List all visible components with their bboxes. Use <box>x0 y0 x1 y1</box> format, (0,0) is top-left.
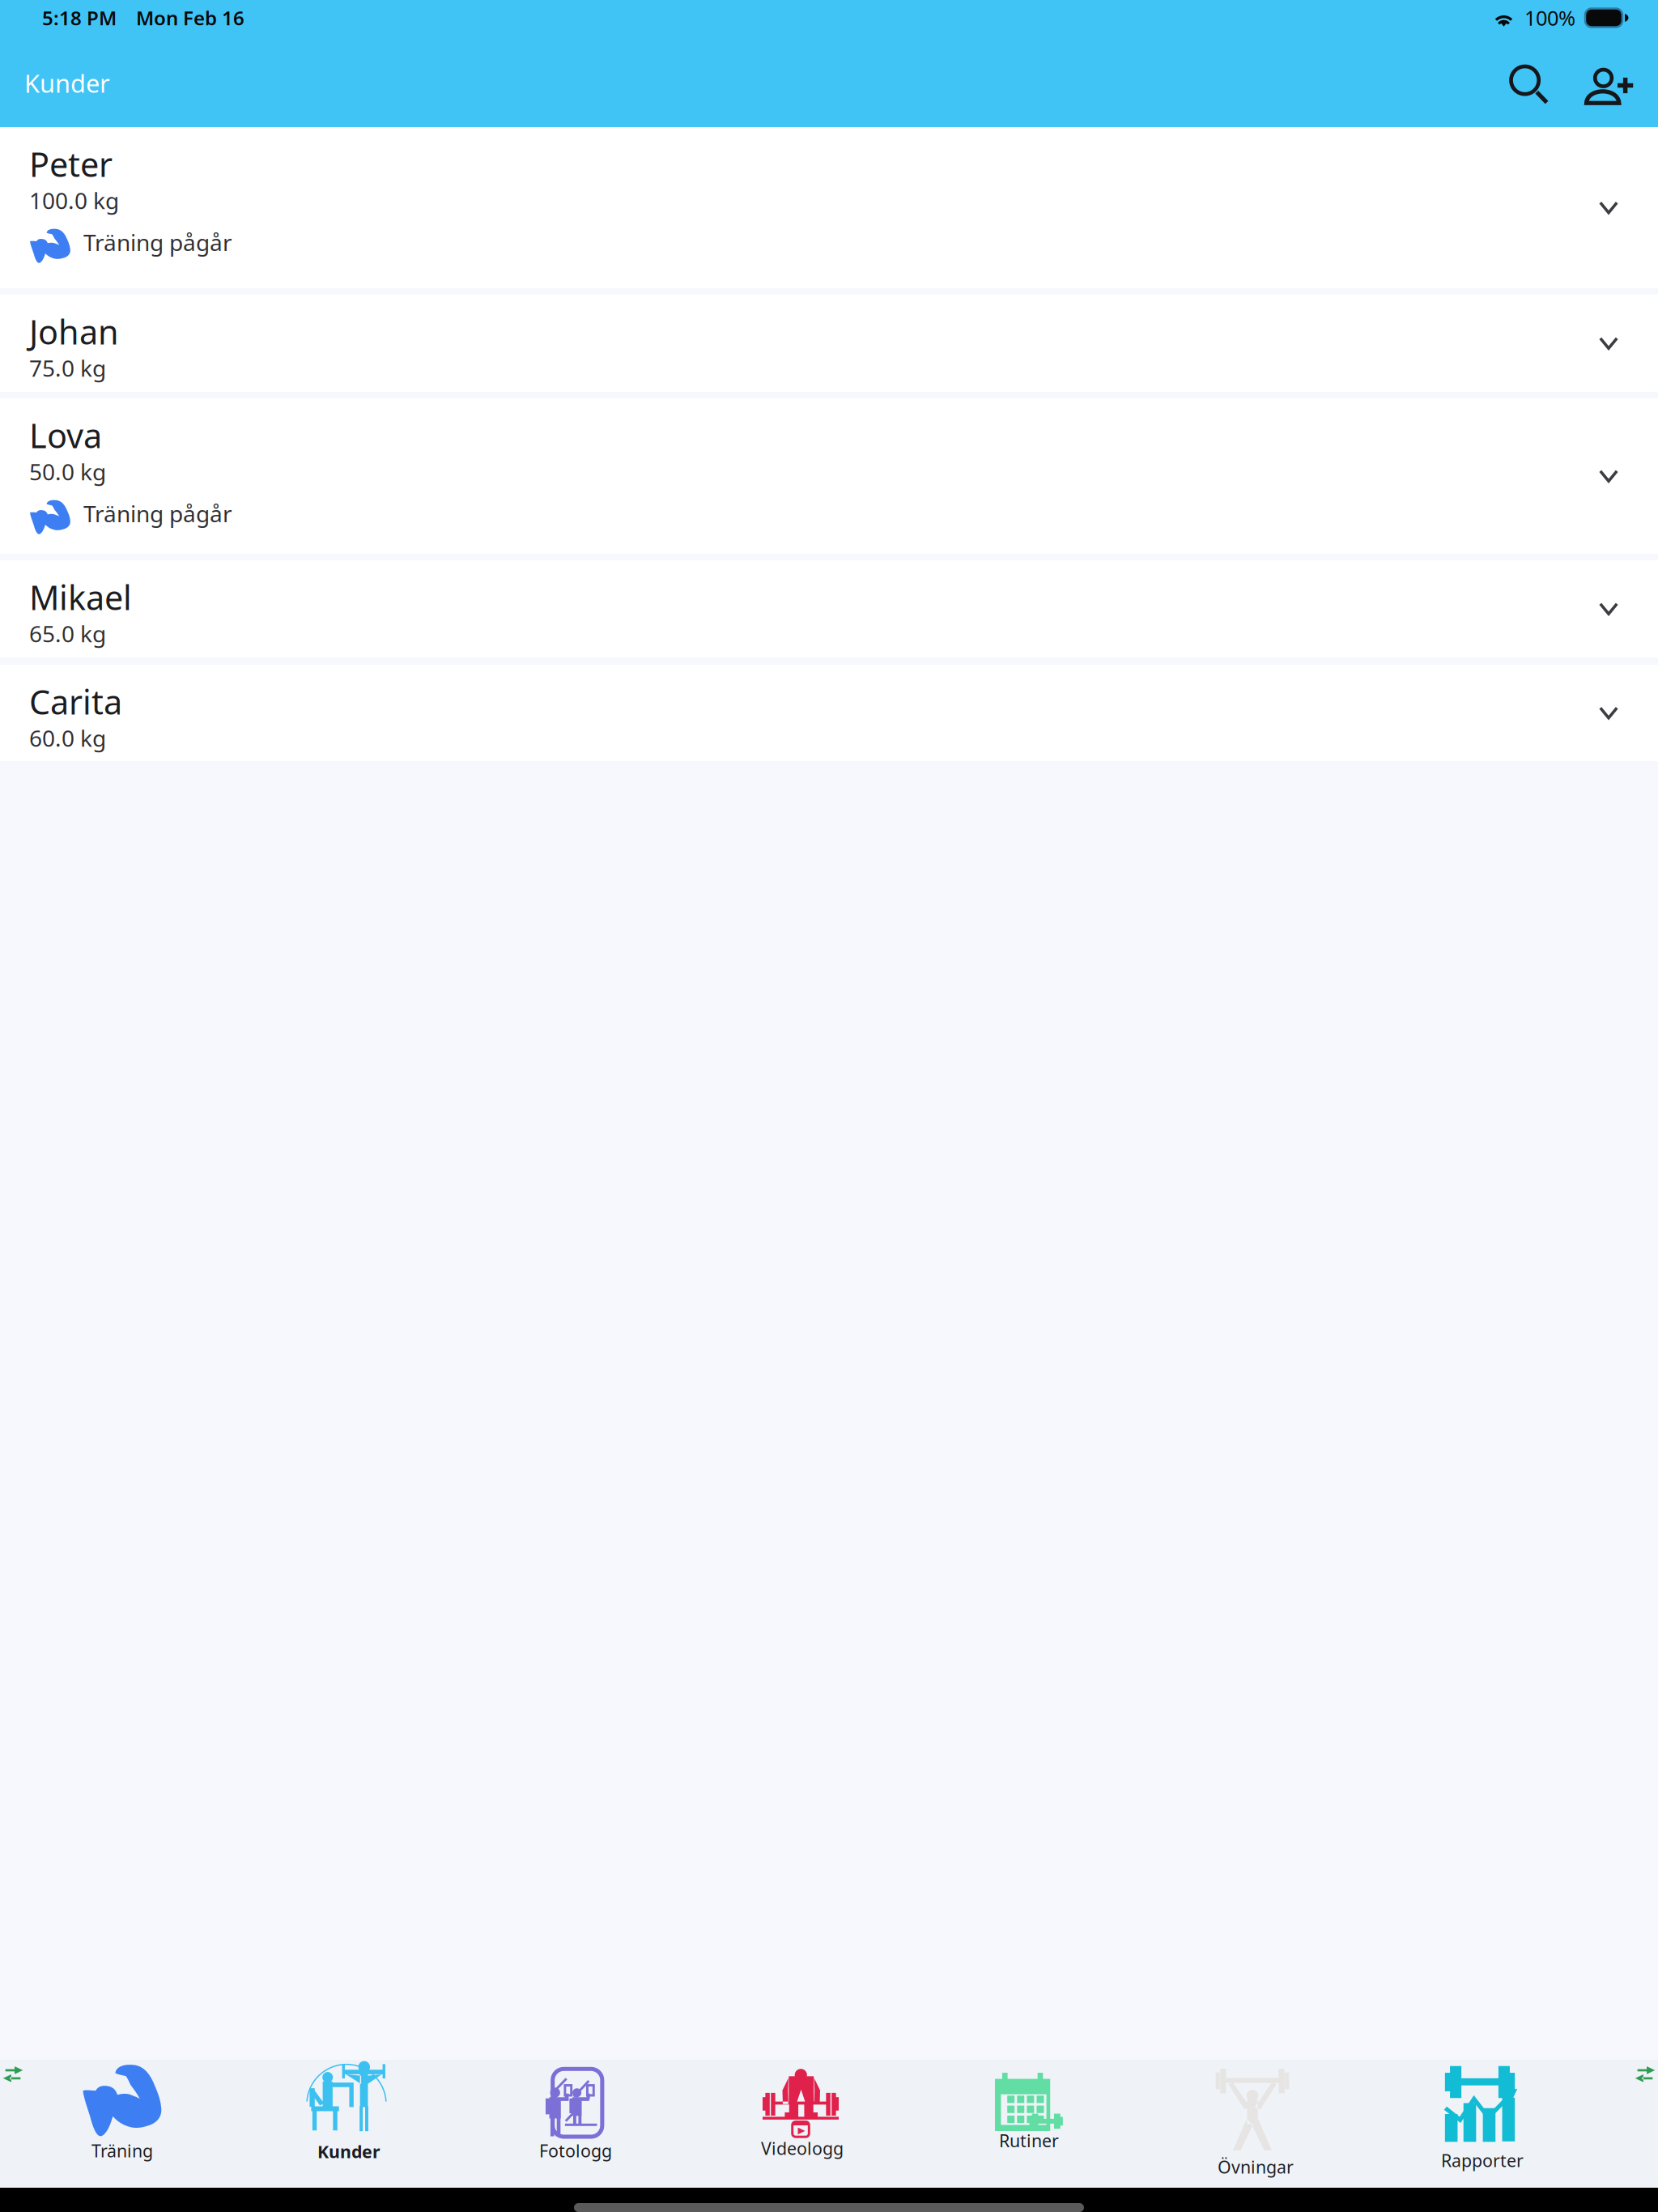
button[interactable]: Lova <box>0 398 1658 554</box>
button[interactable]: Träning <box>9 2060 236 2188</box>
staticText: 100% <box>1524 4 1575 31</box>
staticText: Kunder <box>317 2140 380 2163</box>
staticText: 75.0 kg <box>29 353 106 383</box>
staticText: 65.0 kg <box>29 619 106 649</box>
button[interactable]: Search <box>1488 45 1562 121</box>
staticText: Träning pågår <box>83 227 232 257</box>
button[interactable]: Add client <box>1562 45 1637 121</box>
staticText: Carita <box>29 679 122 724</box>
button[interactable]: Peter <box>0 127 1658 288</box>
staticText: Träning pågår <box>83 498 232 528</box>
staticText: Rutiner <box>999 2129 1059 2152</box>
button[interactable]: Fotologg <box>462 2060 689 2188</box>
staticText: 50.0 kg <box>29 457 106 487</box>
staticText: Mikael <box>29 575 132 619</box>
staticText: Träning <box>91 2139 153 2162</box>
staticText: Videologg <box>761 2137 844 2160</box>
staticText: 60.0 kg <box>29 723 106 753</box>
button[interactable]: Övningar <box>1142 2060 1369 2188</box>
staticText: Kunder <box>24 66 110 99</box>
staticText: Lova <box>29 413 102 457</box>
button[interactable]: Kunder <box>236 2060 462 2188</box>
staticText: 100.0 kg <box>29 185 119 215</box>
staticText: Johan <box>29 309 119 354</box>
staticText: Fotologg <box>539 2139 612 2162</box>
button[interactable]: Videologg <box>689 2060 916 2188</box>
button[interactable]: Rapporter <box>1369 2060 1596 2188</box>
button[interactable]: Johan <box>0 295 1658 392</box>
button[interactable]: Rutiner <box>916 2060 1142 2188</box>
staticText: Peter <box>29 142 113 186</box>
button[interactable]: Carita <box>0 665 1658 761</box>
button[interactable]: Mikael <box>0 560 1658 657</box>
staticText: Övningar <box>1218 2155 1294 2178</box>
staticText: Mon Feb 16 <box>136 5 244 31</box>
staticText: 5:18 PM <box>42 5 117 31</box>
staticText: Rapporter <box>1441 2149 1524 2172</box>
